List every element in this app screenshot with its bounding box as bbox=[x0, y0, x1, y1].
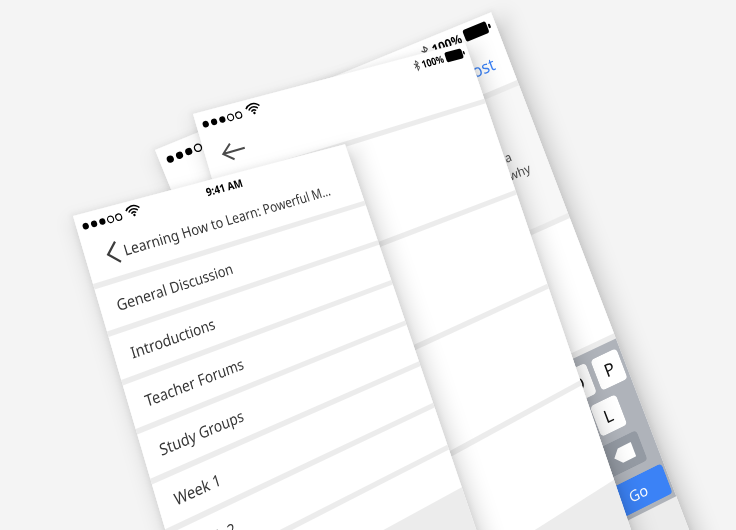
button[interactable]: Backspace bbox=[600, 430, 648, 478]
button[interactable]: Study Groups bbox=[137, 325, 419, 479]
staticText: U bbox=[506, 399, 526, 428]
button[interactable]: Y bbox=[464, 407, 503, 451]
staticText: E bbox=[377, 462, 396, 489]
staticText: Learning How to Learn: Powerful M... bbox=[121, 181, 333, 260]
staticText: Reply bbox=[321, 105, 370, 144]
button[interactable]: S bbox=[365, 501, 406, 530]
staticText: Teacher Forums bbox=[142, 353, 247, 411]
button[interactable]: E bbox=[366, 453, 406, 498]
button[interactable]: Week 3 bbox=[182, 449, 462, 530]
button[interactable] bbox=[430, 495, 609, 530]
button[interactable]: Week 2 bbox=[167, 407, 447, 530]
staticText: 9:41 AM bbox=[307, 73, 358, 108]
staticText: P bbox=[600, 356, 619, 383]
staticText: 100% bbox=[429, 29, 464, 58]
staticText: Post bbox=[459, 52, 498, 86]
staticText: General Discussion bbox=[114, 258, 236, 315]
button[interactable]: I bbox=[528, 377, 566, 421]
staticText: W bbox=[341, 476, 366, 506]
button[interactable]: Post bbox=[459, 52, 498, 86]
staticText: Week 1 bbox=[171, 468, 223, 510]
button[interactable]: Go bbox=[602, 463, 673, 523]
staticText: I cannot agree more! Ordinary things bec… bbox=[214, 123, 544, 323]
staticText: Introductions bbox=[128, 313, 217, 363]
staticText: D bbox=[408, 493, 430, 522]
staticText: Go bbox=[626, 479, 651, 507]
staticText: 100% bbox=[419, 51, 446, 71]
button[interactable]: Q bbox=[299, 484, 340, 530]
button[interactable]: F bbox=[431, 469, 471, 514]
button[interactable]: P bbox=[590, 348, 628, 391]
button[interactable]: Back bbox=[213, 131, 252, 171]
staticText: I bbox=[540, 386, 555, 411]
button[interactable]: Back bbox=[93, 233, 132, 273]
button[interactable]: W bbox=[333, 469, 374, 514]
staticText: R bbox=[410, 446, 429, 473]
staticText: Y bbox=[475, 415, 494, 443]
button[interactable]: C bbox=[442, 511, 481, 530]
button[interactable]: O bbox=[559, 363, 597, 406]
button[interactable]: R bbox=[399, 438, 439, 482]
button[interactable]: Teacher Forums bbox=[123, 285, 405, 429]
staticText: S bbox=[376, 509, 395, 530]
staticText: V bbox=[485, 504, 504, 530]
staticText: F bbox=[442, 478, 460, 505]
staticText: Q bbox=[308, 492, 331, 522]
button[interactable]: L bbox=[590, 394, 627, 437]
staticText: Study Groups bbox=[156, 405, 246, 460]
button[interactable]: K bbox=[559, 409, 597, 452]
staticText: L bbox=[600, 402, 617, 429]
button[interactable]: M bbox=[569, 450, 607, 493]
button[interactable]: Week 1 bbox=[152, 366, 433, 529]
button[interactable]: G bbox=[464, 454, 503, 498]
button[interactable]: Introductions bbox=[109, 245, 391, 380]
button[interactable]: T bbox=[432, 422, 471, 466]
staticText: T bbox=[442, 431, 461, 458]
staticText: Week 2 bbox=[186, 517, 238, 530]
staticText: Mark Smith - 3 days ago bbox=[205, 186, 320, 246]
button[interactable]: D bbox=[399, 485, 439, 530]
button[interactable]: V bbox=[474, 496, 513, 530]
button[interactable]: U bbox=[496, 392, 535, 436]
staticText: 9:41 AM bbox=[204, 175, 245, 199]
staticText: O bbox=[567, 370, 589, 398]
button[interactable]: General Discussion bbox=[95, 205, 378, 332]
